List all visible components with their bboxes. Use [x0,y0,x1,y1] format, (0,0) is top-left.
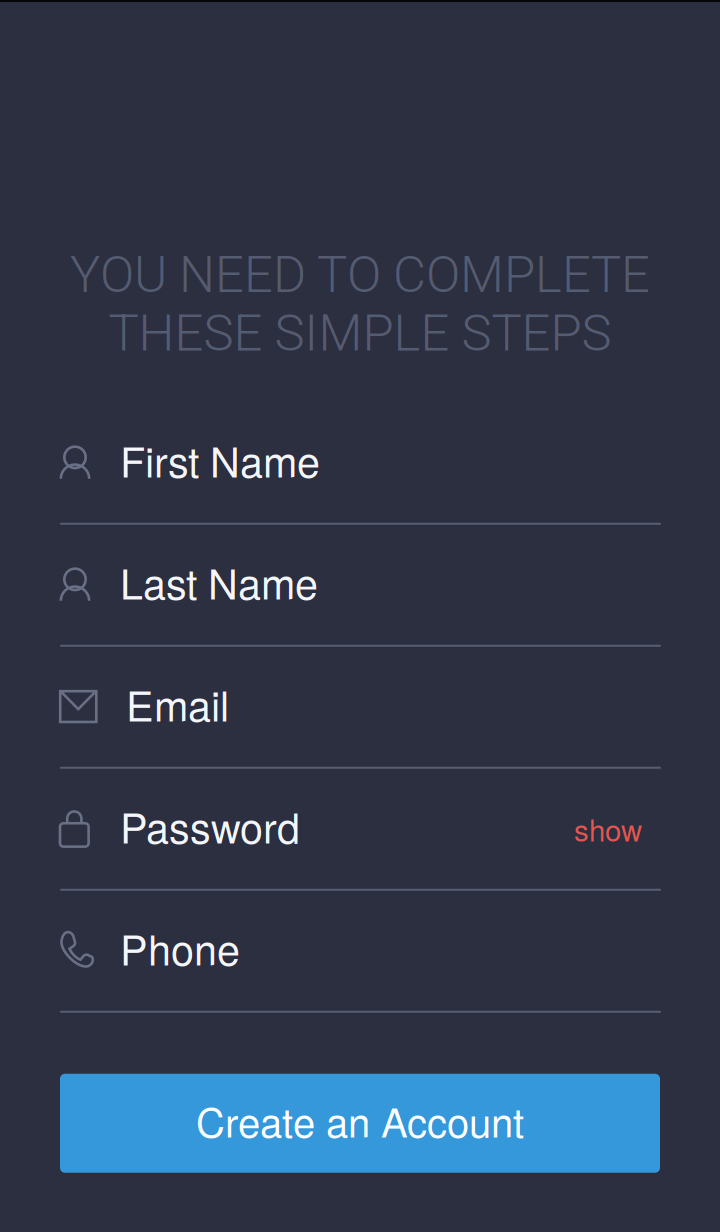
staticText: Last Name [120,552,318,611]
button[interactable]: First Name [0,403,720,523]
staticText: Email [126,674,229,733]
button[interactable]: Create an Account [60,1074,660,1173]
button[interactable]: Last Name [0,525,720,645]
staticText: YOU NEED TO COMPLETE [70,245,650,304]
staticText: THESE SIMPLE STEPS [108,303,611,363]
staticText: Create an Account [196,1092,524,1149]
button[interactable]: Password [0,769,574,889]
staticText: Password [120,796,300,855]
staticText: Phone [120,918,240,977]
staticText: show [574,808,642,850]
button[interactable]: show [574,796,720,862]
button[interactable]: Phone [0,891,720,1011]
staticText: First Name [120,430,320,489]
button[interactable]: Email [0,647,720,767]
